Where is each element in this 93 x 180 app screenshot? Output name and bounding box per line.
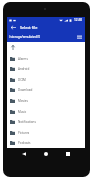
button[interactable]: Recents xyxy=(63,149,73,159)
staticText: 12:30 xyxy=(74,18,83,22)
button[interactable]: Android xyxy=(7,63,85,74)
button[interactable]: Download xyxy=(7,84,85,95)
button[interactable]: Movies xyxy=(7,95,85,106)
staticText: DCIM xyxy=(18,78,26,82)
staticText: Music xyxy=(18,110,27,114)
staticText: Alarms xyxy=(18,57,28,61)
staticText: Download xyxy=(18,88,33,92)
button[interactable]: DCIM xyxy=(7,74,85,85)
button[interactable]: Sort xyxy=(75,33,84,42)
button[interactable]: Parent folder xyxy=(7,42,85,53)
staticText: Podcasts xyxy=(18,141,31,145)
button[interactable]: Home xyxy=(41,149,51,159)
button[interactable]: Alarms xyxy=(7,53,85,64)
staticText: Notifications xyxy=(18,120,36,124)
button[interactable]: Music xyxy=(7,106,85,117)
button[interactable]: Notifications xyxy=(7,116,85,127)
button[interactable]: Back xyxy=(9,23,18,32)
staticText: /storage/emulated/0 xyxy=(9,35,41,39)
button[interactable]: Back xyxy=(19,149,29,159)
staticText: Movies xyxy=(18,99,28,103)
button[interactable]: Pictures xyxy=(7,127,85,138)
staticText: Android xyxy=(18,67,30,71)
button[interactable]: Podcasts xyxy=(7,137,85,148)
staticText: Pictures xyxy=(18,131,30,135)
staticText: Select file xyxy=(20,25,38,30)
